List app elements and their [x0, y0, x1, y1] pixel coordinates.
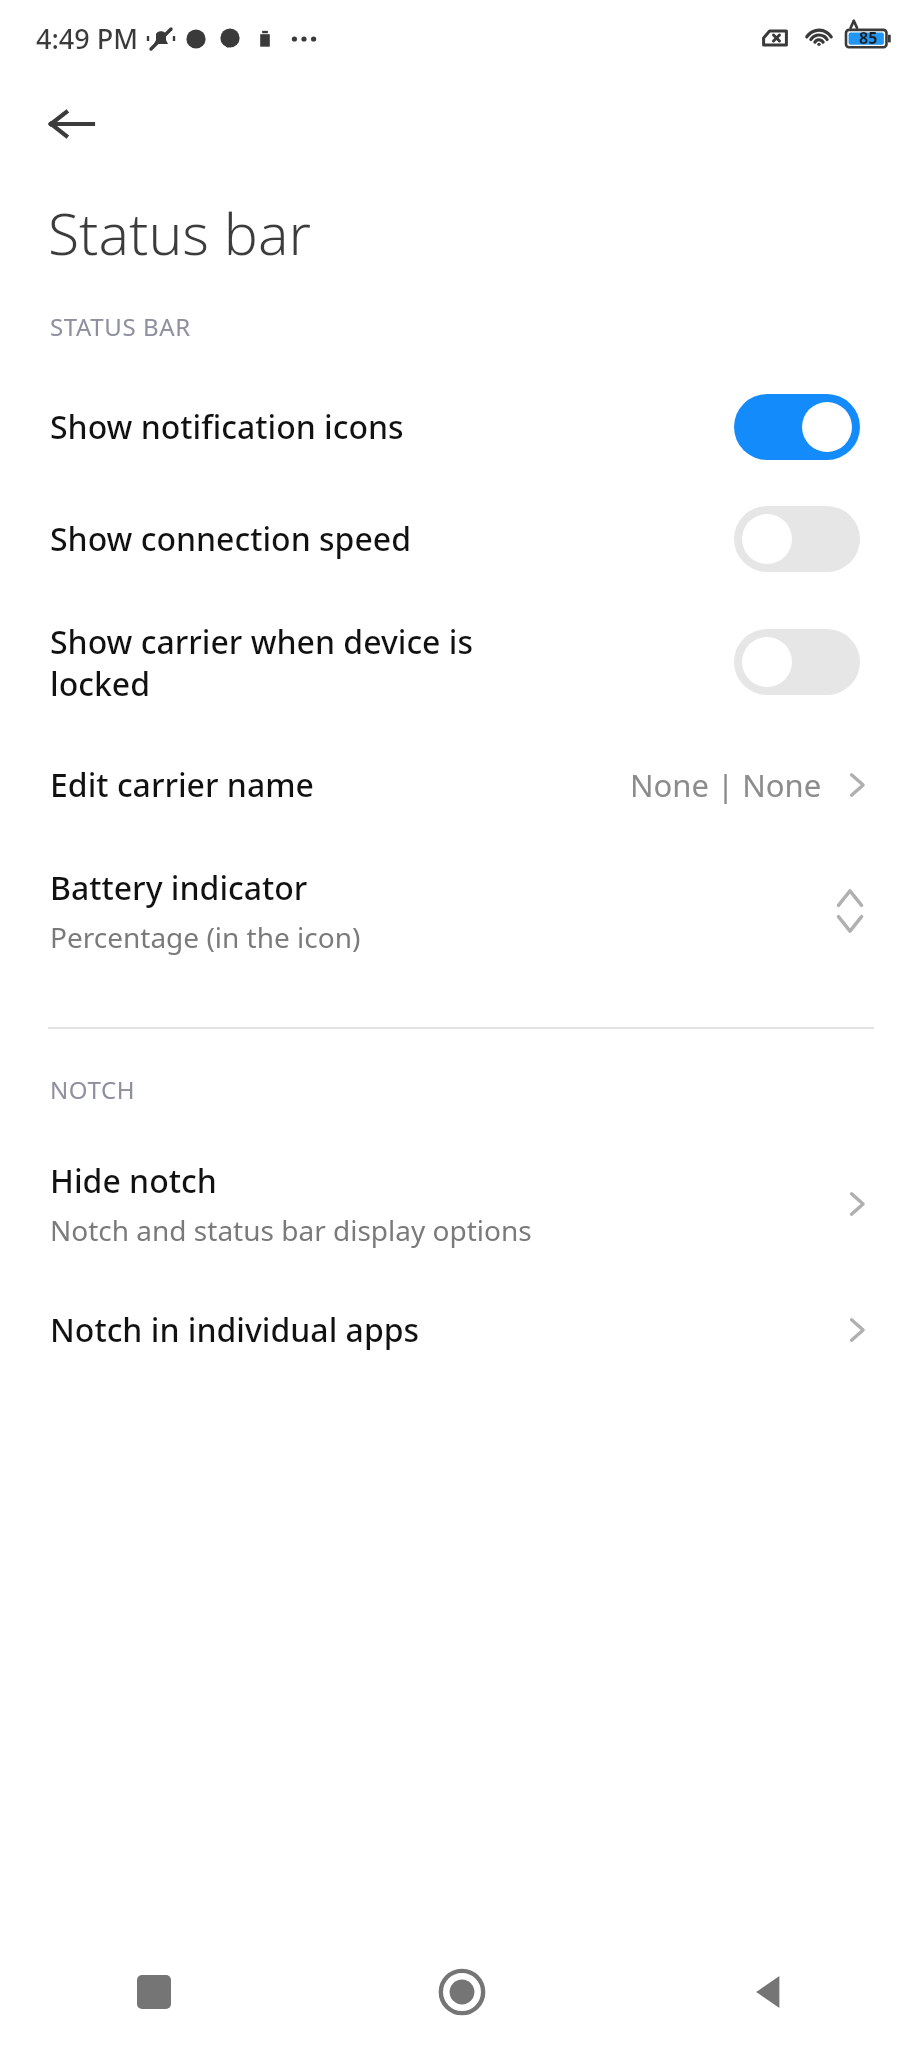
button[interactable]: Battery indicator	[0, 841, 922, 981]
staticText: Edit carrier name	[50, 763, 630, 807]
button[interactable]: Off	[734, 629, 860, 695]
button[interactable]: Notch in individual apps	[0, 1274, 922, 1386]
staticText: 4:49 PM	[36, 20, 138, 57]
button[interactable]: Recent apps	[0, 1936, 308, 2048]
button[interactable]: Show notification icons	[0, 371, 922, 483]
staticText: Hide notch	[50, 1159, 217, 1203]
staticText: Show notification icons	[50, 405, 718, 449]
staticText: STATUS BAR	[50, 310, 191, 343]
button[interactable]: Show connection speed	[0, 483, 922, 595]
button[interactable]: Hide notch	[0, 1134, 922, 1274]
other: Change battery indicator	[828, 879, 872, 943]
staticText: Notch and status bar display options	[50, 1211, 532, 1249]
staticText: Notch in individual apps	[50, 1308, 420, 1352]
button[interactable]: Back	[34, 86, 110, 162]
button[interactable]: Off	[734, 506, 860, 572]
staticText: 85	[859, 27, 878, 49]
staticText: Status bar	[48, 194, 311, 272]
staticText: None | None	[630, 764, 822, 806]
staticText: Show carrier when device is locked	[50, 620, 718, 705]
button[interactable]: Home	[308, 1936, 615, 2048]
button[interactable]: Back	[615, 1936, 922, 2048]
button[interactable]: On	[734, 394, 860, 460]
staticText: Show connection speed	[50, 517, 718, 561]
button[interactable]: Show carrier when device is locked	[0, 595, 922, 729]
staticText: NOTCH	[50, 1073, 136, 1106]
button[interactable]: Edit carrier name	[0, 729, 922, 841]
staticText: Percentage (in the icon)	[50, 918, 361, 956]
staticText: Battery indicator	[50, 866, 308, 910]
